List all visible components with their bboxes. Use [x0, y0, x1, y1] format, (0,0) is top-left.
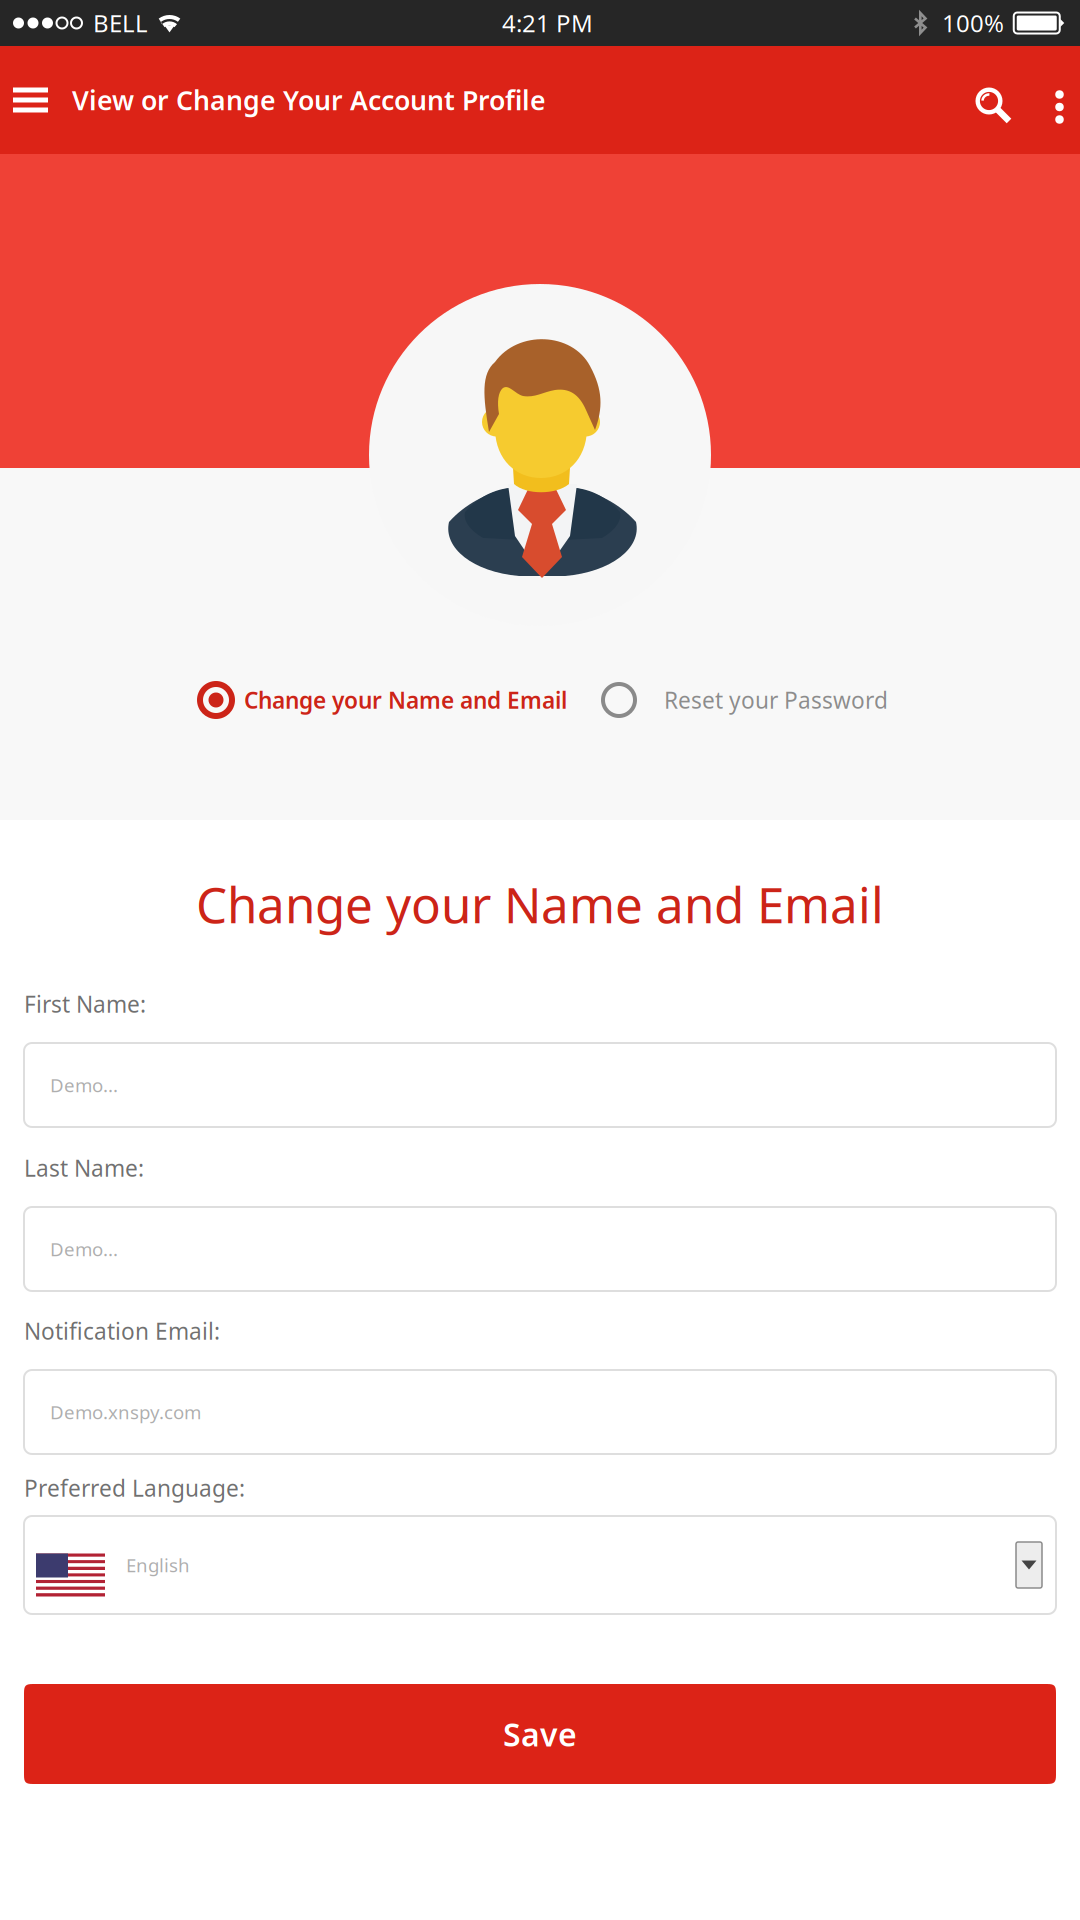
- staticText: Save: [503, 1713, 577, 1755]
- button[interactable]: More options: [1039, 46, 1080, 154]
- button[interactable]: Change your Name and Email: [200, 680, 567, 720]
- staticText: Preferred Language:: [24, 1473, 245, 1503]
- button[interactable]: English: [24, 1516, 1056, 1614]
- staticText: Change your Name and Email: [196, 871, 884, 937]
- staticText: Last Name:: [24, 1153, 144, 1183]
- staticText: Notification Email:: [24, 1316, 220, 1346]
- staticText: BELL: [93, 7, 148, 39]
- staticText: Change your Name and Email: [244, 685, 567, 715]
- staticText: Reset your Password: [664, 685, 888, 715]
- staticText: Demo.xnspy.com: [50, 1400, 201, 1424]
- button[interactable]: Demo...: [24, 1043, 1056, 1127]
- staticText: English: [126, 1553, 190, 1577]
- staticText: View or Change Your Account Profile: [72, 82, 546, 118]
- button[interactable]: Demo.xnspy.com: [24, 1370, 1056, 1454]
- button[interactable]: Reset your Password: [603, 680, 888, 720]
- staticText: First Name:: [24, 989, 146, 1019]
- staticText: 4:21 PM: [502, 7, 593, 39]
- button[interactable]: Menu: [0, 46, 61, 154]
- button[interactable]: Search: [949, 46, 1039, 154]
- staticText: Demo...: [50, 1073, 118, 1097]
- button[interactable]: Demo...: [24, 1207, 1056, 1291]
- button[interactable]: Save: [24, 1684, 1056, 1784]
- staticText: 100%: [942, 7, 1004, 39]
- staticText: Demo...: [50, 1237, 118, 1261]
